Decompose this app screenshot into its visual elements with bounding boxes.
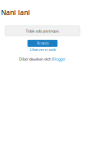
staticText: Diberdayakan oleh [19,56,51,61]
button[interactable]: Beranda [27,40,57,47]
button[interactable]: Lihat versi web [0,47,85,52]
staticText: Lihat versi web [29,47,55,52]
staticText: Blogger [52,56,66,61]
staticText: Tidak ada postingan. [25,28,59,33]
staticText: Beranda [37,42,48,45]
button[interactable]: Blogger [52,56,66,61]
staticText: Nani lani [1,8,30,17]
